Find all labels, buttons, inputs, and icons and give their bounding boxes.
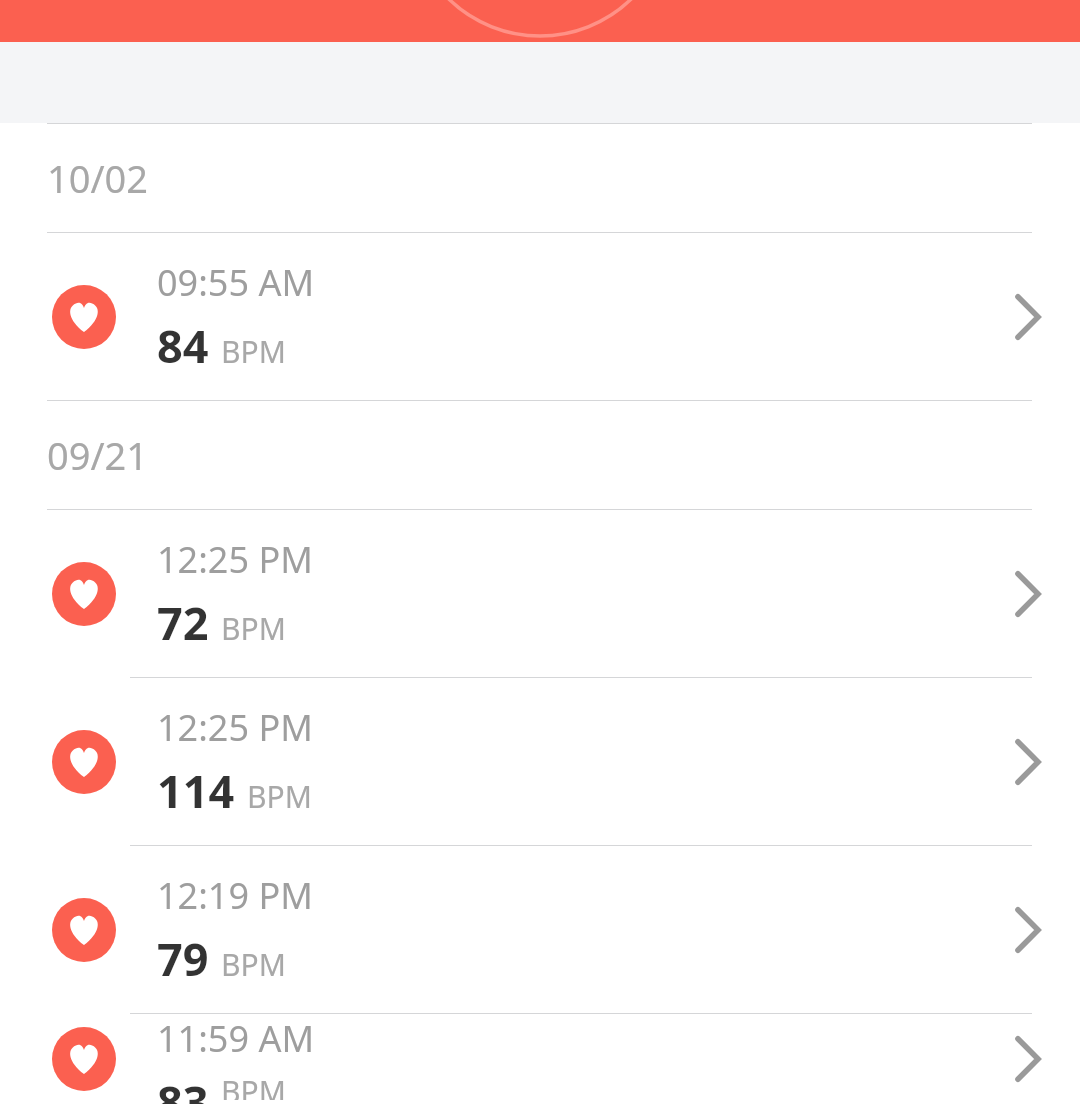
button[interactable]: Open reading details xyxy=(992,281,1064,353)
staticText: BPM xyxy=(247,776,312,817)
staticText: BPM xyxy=(221,944,286,985)
staticText: 12:25 PM xyxy=(157,535,313,584)
staticText: BPM xyxy=(221,608,286,649)
button[interactable]: 12:25 PM xyxy=(0,678,1080,845)
staticText: 10/02 xyxy=(47,152,149,204)
staticText: 114 xyxy=(157,760,235,821)
staticText: 11:59 AM xyxy=(157,1014,315,1063)
staticText: 12:25 PM xyxy=(157,703,313,752)
button[interactable]: Open reading details xyxy=(992,726,1064,798)
staticText: BPM xyxy=(221,1071,286,1100)
staticText: 83 xyxy=(157,1071,209,1104)
staticText: 09/21 xyxy=(47,429,149,481)
button[interactable]: Open reading details xyxy=(992,1023,1064,1095)
button[interactable]: 11:59 AM xyxy=(0,1014,1080,1104)
staticText: BPM xyxy=(221,331,286,372)
staticText: 72 xyxy=(157,592,209,653)
staticText: 84 xyxy=(157,315,209,376)
button[interactable]: 12:19 PM xyxy=(0,846,1080,1013)
button[interactable]: 09:55 AM xyxy=(0,233,1080,400)
staticText: 79 xyxy=(157,928,209,989)
button[interactable]: 12:25 PM xyxy=(0,510,1080,677)
staticText: 09:55 AM xyxy=(157,258,315,307)
staticText: 12:19 PM xyxy=(157,871,313,920)
button[interactable]: Open reading details xyxy=(992,894,1064,966)
button[interactable]: Open reading details xyxy=(992,558,1064,630)
